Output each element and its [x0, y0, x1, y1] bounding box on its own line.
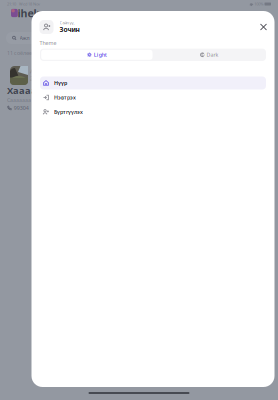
staticText: Сайн уу, — [59, 20, 74, 25]
staticText: Dark — [206, 51, 218, 58]
staticText: 21:10 — [7, 1, 16, 7]
staticText: Ажл — [20, 34, 30, 42]
staticText: Нэвтрэх — [54, 94, 76, 101]
button[interactable]: Dark — [153, 50, 265, 60]
staticText: А — [30, 68, 33, 75]
staticText: 2 — [30, 75, 33, 82]
staticText: Theme — [39, 39, 56, 47]
staticText: 100% — [253, 1, 263, 7]
staticText: Нүүр — [54, 79, 67, 86]
staticText: Wed 18 Nov — [16, 1, 40, 7]
button[interactable]: Нүүр — [40, 76, 266, 89]
button[interactable]: Бүртгүүлэх — [40, 105, 266, 118]
staticText: 99304 — [14, 104, 29, 112]
button[interactable]: Нэвтрэх — [40, 91, 266, 104]
staticText: Бүртгүүлэх — [54, 108, 83, 115]
staticText: Зочин — [59, 25, 79, 34]
button[interactable]: Close — [256, 20, 270, 34]
button[interactable]: Light — [41, 50, 152, 60]
staticText: Хаааааа — [7, 84, 49, 97]
staticText: Light — [94, 51, 107, 58]
staticText: 11 соёлөө 19 — [7, 49, 39, 57]
staticText: ihelp — [17, 6, 43, 20]
staticText: Сааааааа — [7, 96, 31, 104]
